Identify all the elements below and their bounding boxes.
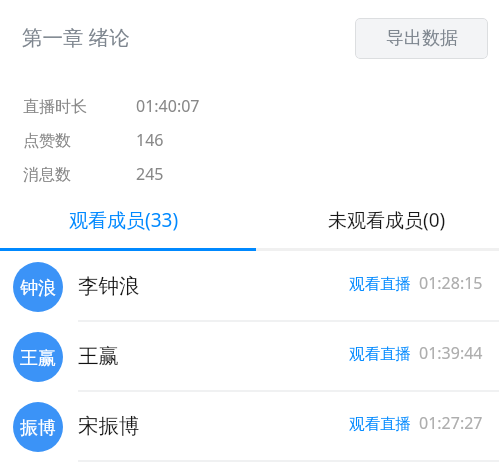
staticText: 146 <box>136 129 164 151</box>
staticText: 未观看成员(0) <box>328 207 446 233</box>
staticText: 01:28:15 <box>419 272 483 294</box>
button[interactable]: Avatar 钟浪 <box>0 251 499 321</box>
button[interactable]: Avatar 王赢 <box>0 321 499 391</box>
staticText: 观看直播 <box>349 414 411 434</box>
staticText: 01:27:27 <box>419 412 483 434</box>
staticText: 王赢 <box>20 347 56 370</box>
staticText: 李钟浪 <box>78 273 140 299</box>
staticText: 直播时长 <box>23 97 87 117</box>
button[interactable]: 观看直播 <box>341 404 419 444</box>
other: Avatar 振博 <box>13 402 63 452</box>
staticText: 导出数据 <box>386 27 458 50</box>
other: Avatar 钟浪 <box>13 262 63 312</box>
staticText: 宋振博 <box>78 413 140 439</box>
button[interactable]: 导出数据 <box>355 18 488 59</box>
staticText: 钟浪 <box>20 277 56 300</box>
staticText: 观看直播 <box>349 344 411 364</box>
button[interactable]: 观看成员(33) <box>0 199 256 251</box>
staticText: 消息数 <box>23 165 71 185</box>
button[interactable]: 观看直播 <box>341 334 419 374</box>
staticText: 观看直播 <box>349 274 411 294</box>
staticText: 观看成员(33) <box>69 207 179 233</box>
button[interactable]: Avatar 振博 <box>0 391 499 461</box>
staticText: 点赞数 <box>23 131 71 151</box>
staticText: 王赢 <box>78 343 119 369</box>
staticText: 第一章 绪论 <box>22 23 130 51</box>
staticText: 245 <box>136 163 164 185</box>
staticText: 01:39:44 <box>419 342 483 364</box>
button[interactable]: 未观看成员(0) <box>256 199 499 251</box>
button[interactable]: 观看直播 <box>341 264 419 304</box>
staticText: 振博 <box>20 417 56 440</box>
other: Avatar 王赢 <box>13 332 63 382</box>
staticText: 01:40:07 <box>136 95 200 117</box>
